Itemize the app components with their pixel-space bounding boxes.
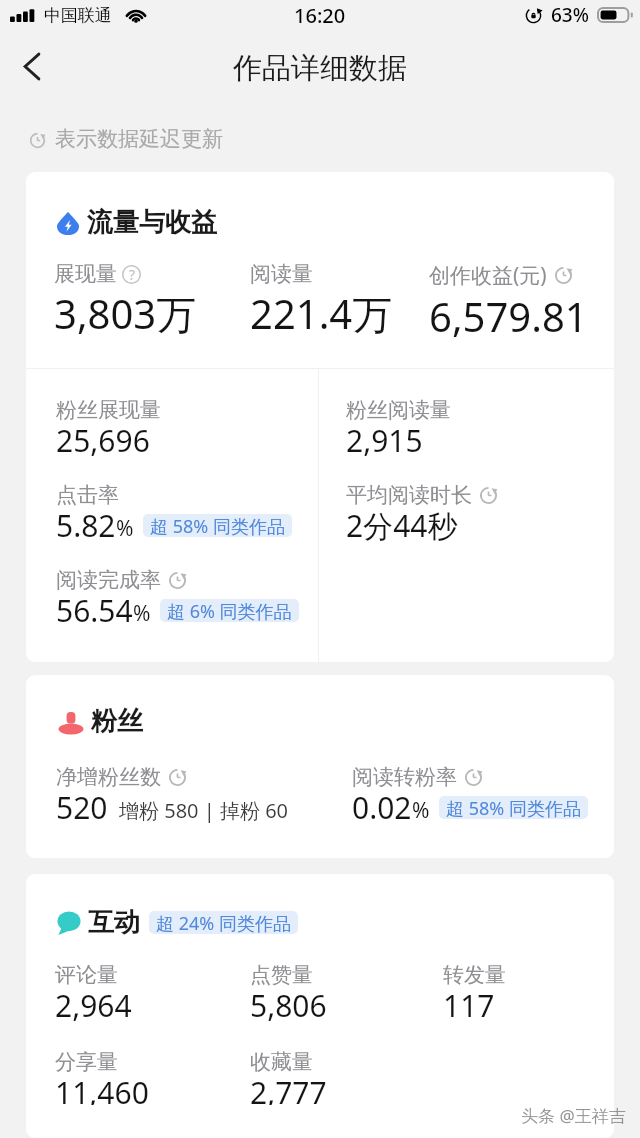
staticText: 3,803万	[54, 286, 197, 341]
staticText: 超 6% 同类作品	[167, 599, 292, 622]
staticText: 粉丝	[91, 705, 143, 738]
staticText: 5.82	[56, 505, 116, 546]
staticText: 增粉 580 | 掉粉 60	[119, 797, 289, 824]
staticText: 超 24% 同类作品	[156, 911, 291, 934]
staticText: 分享量	[55, 1049, 118, 1075]
staticText: 阅读完成率	[56, 567, 161, 593]
staticText: 117	[443, 985, 495, 1026]
staticText: 11,460	[55, 1072, 149, 1105]
staticText: 0.02	[352, 787, 412, 828]
staticText: 221.4万	[250, 286, 393, 341]
staticText: 5,806	[250, 985, 327, 1026]
staticText: 2分44秒	[346, 505, 458, 546]
staticText: 表示数据延迟更新	[55, 126, 223, 152]
staticText: 520	[56, 787, 108, 828]
staticText: 阅读转粉率	[352, 764, 457, 790]
staticText: 超 58% 同类作品	[150, 514, 285, 537]
staticText: 2,915	[346, 420, 423, 461]
staticText: 点击率	[56, 482, 119, 508]
staticText: 6,579.81	[429, 289, 588, 343]
staticText: 流量与收益	[87, 206, 217, 239]
staticText: 互动	[88, 906, 140, 939]
staticText: 粉丝展现量	[56, 397, 161, 423]
staticText: 56.54	[56, 590, 133, 631]
staticText: 阅读量	[250, 261, 313, 287]
staticText: 创作收益(元)	[429, 261, 547, 290]
staticText: 2,777	[250, 1072, 327, 1105]
staticText: 超 58% 同类作品	[446, 796, 581, 819]
staticText: 63%	[551, 2, 589, 28]
staticText: 16:20	[294, 2, 346, 29]
staticText: %	[133, 599, 151, 628]
staticText: 粉丝阅读量	[346, 397, 451, 423]
button[interactable]: Back	[8, 45, 56, 93]
staticText: %	[412, 796, 430, 825]
staticText: %	[116, 514, 134, 543]
staticText: 展现量	[54, 261, 117, 287]
staticText: 评论量	[55, 962, 118, 988]
staticText: 中国联通	[44, 5, 112, 26]
staticText: 转发量	[443, 962, 506, 988]
staticText: 净增粉丝数	[56, 764, 161, 790]
staticText: 25,696	[56, 420, 150, 461]
staticText: ?	[129, 265, 135, 284]
staticText: 平均阅读时长	[346, 482, 472, 508]
staticText: 头条 @王祥吉	[521, 1104, 626, 1127]
staticText: 作品详细数据	[233, 50, 407, 87]
staticText: 收藏量	[250, 1049, 313, 1075]
staticText: 2,964	[55, 985, 132, 1026]
staticText: 点赞量	[250, 962, 313, 988]
